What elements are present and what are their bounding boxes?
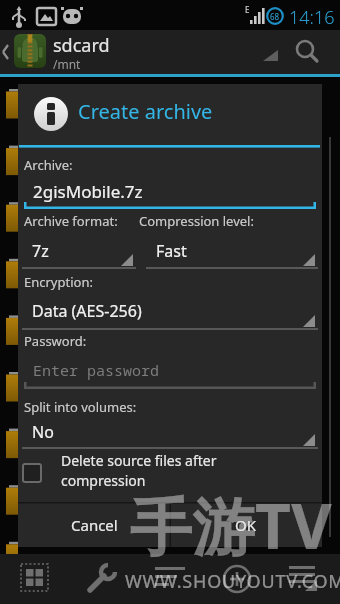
staticText: Encryption:	[24, 273, 93, 291]
staticText: No	[32, 421, 54, 443]
staticText: 68	[270, 11, 280, 22]
button[interactable]: Data (AES-256)	[22, 296, 318, 330]
button[interactable]	[149, 558, 191, 600]
staticText: WWW.SHOUYOUTV.COM	[125, 569, 340, 594]
staticText: Archive:	[24, 156, 73, 174]
staticText: Split into volumes:	[24, 398, 137, 416]
staticText: E	[245, 4, 250, 15]
staticText: Create archive	[78, 98, 213, 125]
staticText: 手游TV	[130, 483, 333, 568]
button[interactable]	[283, 558, 325, 600]
button[interactable]: 7z	[22, 236, 136, 269]
staticText: 2gisMobile.7z	[33, 180, 143, 203]
button[interactable]: Enter password	[24, 354, 316, 384]
button[interactable]: Delete source files after compression	[18, 450, 322, 494]
staticText: Delete source files after compression	[61, 451, 217, 490]
staticText: Password:	[24, 332, 87, 350]
staticText: Archive format:	[24, 212, 118, 230]
button[interactable]: OK	[170, 503, 322, 547]
staticText: 7z	[32, 240, 49, 262]
staticText: Fast	[156, 240, 187, 262]
button[interactable]: Cancel	[18, 503, 170, 547]
staticText: sdcard	[53, 33, 110, 58]
button[interactable]: 2gisMobile.7z	[24, 172, 316, 208]
staticText: Cancel	[71, 515, 118, 535]
button[interactable]	[82, 558, 124, 600]
button[interactable]: No	[22, 418, 318, 449]
staticText: 14:16	[289, 5, 335, 30]
button[interactable]	[14, 34, 46, 68]
staticText: OK	[235, 515, 257, 535]
button[interactable]	[14, 558, 56, 600]
button[interactable]: Fast	[146, 236, 318, 269]
staticText: Enter password	[33, 360, 160, 380]
button[interactable]	[216, 558, 258, 600]
button[interactable]	[292, 36, 324, 68]
staticText: Compression level:	[139, 212, 254, 230]
staticText: /mnt	[53, 56, 81, 72]
staticText: Data (AES-256)	[32, 300, 142, 322]
